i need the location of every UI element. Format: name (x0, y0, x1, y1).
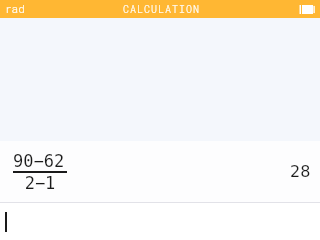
button[interactable]: rad (5, 1, 25, 16)
staticText: CALCULATION (123, 3, 201, 16)
staticText: rad (5, 1, 25, 16)
button[interactable]: Expression input (0, 203, 320, 240)
staticText: 90−62 (13, 151, 65, 171)
button[interactable]: 28 (290, 162, 311, 181)
staticText: 2−1 (13, 173, 67, 193)
button[interactable]: 90−62 (13, 151, 67, 193)
button[interactable]: Battery status (298, 2, 316, 16)
